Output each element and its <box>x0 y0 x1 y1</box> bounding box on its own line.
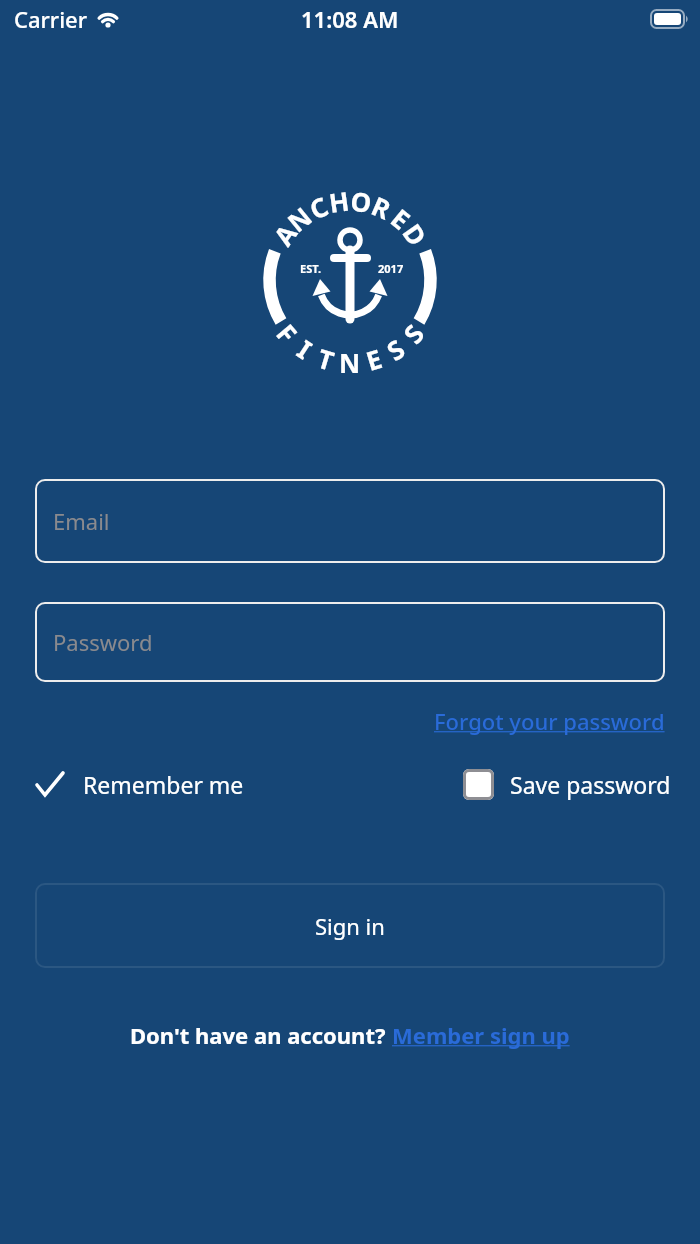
staticText: E <box>384 200 418 237</box>
staticText: Sign in <box>315 911 385 941</box>
staticText: Carrier <box>14 4 88 34</box>
staticText: N <box>280 198 319 239</box>
staticText: S <box>395 316 432 350</box>
button[interactable]: Remember me <box>35 764 244 804</box>
button[interactable]: Forgot your password <box>434 706 665 736</box>
button[interactable]: Sign in <box>35 883 665 968</box>
staticText: D <box>395 216 436 253</box>
staticText: F <box>269 316 306 350</box>
staticText: A <box>265 217 304 252</box>
staticText: E <box>362 340 386 378</box>
staticText: T <box>314 340 339 378</box>
staticText: Save password <box>510 769 671 800</box>
button[interactable]: Member sign up <box>392 1020 570 1050</box>
staticText: EST. <box>300 261 321 276</box>
staticText: O <box>349 182 374 220</box>
staticText: Email <box>53 506 110 536</box>
staticText: 11:08 AM <box>301 4 399 34</box>
staticText: H <box>327 182 351 220</box>
staticText: R <box>367 187 397 227</box>
button[interactable]: Save password <box>463 764 671 804</box>
staticText: Don't have an account? <box>130 1020 392 1050</box>
staticText: I <box>291 331 320 367</box>
staticText: Remember me <box>83 769 244 800</box>
staticText: C <box>304 188 333 227</box>
button[interactable]: Email <box>35 479 665 563</box>
staticText: Password <box>53 627 153 657</box>
staticText: N <box>339 345 361 380</box>
staticText: S <box>380 330 411 368</box>
staticText: 2017 <box>378 261 404 276</box>
button[interactable]: Password <box>35 602 665 682</box>
